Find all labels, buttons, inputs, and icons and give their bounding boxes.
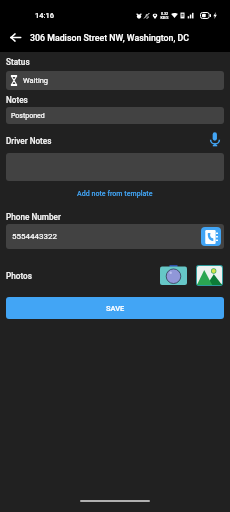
button[interactable]: Back: [4, 28, 27, 47]
staticText: 14:16: [35, 11, 55, 20]
staticText: Driver Notes: [6, 136, 52, 146]
button[interactable]: Postponed: [6, 107, 224, 124]
button[interactable]: Choose photo from gallery: [196, 265, 223, 286]
staticText: SAVE: [106, 304, 125, 313]
button[interactable]: Add note from template: [75, 187, 155, 199]
staticText: Notes: [6, 95, 28, 105]
staticText: 0.32 KB/S: [160, 12, 169, 20]
button[interactable]: SAVE: [6, 297, 224, 319]
staticText: Waiting: [23, 76, 49, 85]
button[interactable]: Waiting: [6, 71, 224, 90]
button[interactable]: Voice input: [206, 132, 224, 146]
button[interactable]: Open contacts: [201, 227, 221, 246]
staticText: 306 Madison Street NW, Washington, DC: [30, 33, 190, 43]
staticText: Status: [6, 57, 30, 67]
button[interactable]: Take photo: [160, 265, 187, 286]
staticText: Phone Number: [6, 212, 61, 222]
staticText: 5554443322: [12, 232, 57, 241]
staticText: Postponed: [11, 112, 45, 120]
staticText: Photos: [6, 271, 32, 281]
